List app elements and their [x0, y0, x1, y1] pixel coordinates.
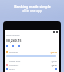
staticText: -$32.40 — [50, 51, 57, 54]
button[interactable]: Salary — [5, 67, 59, 71]
staticText: all in one app — [22, 9, 42, 13]
staticText: Salary — [9, 68, 15, 71]
staticText: -$8.20 — [51, 64, 57, 67]
staticText: $8,240.15 — [6, 38, 22, 43]
staticText: Total balance — [6, 34, 20, 37]
staticText: Banking made simple — [14, 4, 51, 9]
button[interactable]: Groceries — [5, 50, 59, 54]
button[interactable]: Transport — [5, 63, 59, 67]
staticText: Groceries — [9, 51, 18, 54]
button[interactable]: Coffee shop — [5, 59, 59, 63]
staticText: Coffee shop — [9, 60, 21, 63]
staticText: -$4.50 — [51, 60, 57, 63]
staticText: Transport — [9, 64, 19, 67]
